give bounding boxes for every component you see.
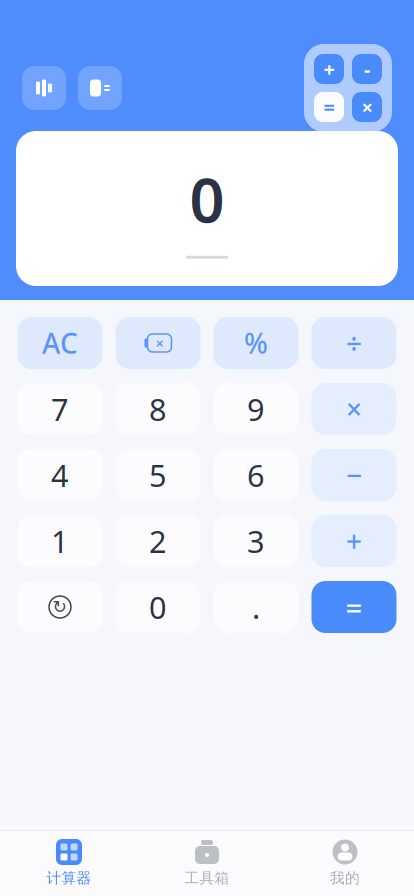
button[interactable]: %: [213, 317, 298, 369]
staticText: 我的: [330, 869, 360, 887]
staticText: ×: [361, 94, 372, 120]
staticText: 8: [149, 389, 167, 429]
staticText: +: [323, 56, 334, 82]
staticText: 7: [51, 389, 69, 429]
staticText: 3: [247, 521, 265, 561]
button[interactable]: +: [311, 515, 396, 567]
button[interactable]: Unit converter: [78, 66, 122, 110]
staticText: 1: [51, 521, 69, 561]
staticText: −: [346, 456, 362, 494]
button[interactable]: 3: [213, 515, 298, 567]
button[interactable]: ÷: [311, 317, 396, 369]
staticText: 9: [247, 389, 265, 429]
button[interactable]: 6: [213, 449, 298, 501]
button[interactable]: 1: [17, 515, 102, 567]
staticText: =: [345, 587, 362, 626]
button[interactable]: 8: [115, 383, 200, 435]
button[interactable]: 我的: [276, 837, 414, 889]
staticText: 工具箱: [184, 869, 229, 887]
staticText: 计算器: [46, 869, 91, 887]
button[interactable]: History: [17, 581, 102, 633]
button[interactable]: 4: [17, 449, 102, 501]
button[interactable]: 9: [213, 383, 298, 435]
button[interactable]: AC: [17, 317, 102, 369]
staticText: 0: [189, 158, 224, 240]
staticText: AC: [42, 324, 78, 362]
button[interactable]: 5: [115, 449, 200, 501]
button[interactable]: 0: [115, 581, 200, 633]
staticText: %: [244, 324, 268, 362]
staticText: .: [252, 587, 260, 627]
staticText: ×: [346, 390, 362, 428]
staticText: =: [323, 94, 334, 120]
button[interactable]: 工具箱: [138, 837, 276, 889]
button[interactable]: ×: [311, 383, 396, 435]
staticText: 2: [149, 521, 167, 561]
staticText: ↻: [52, 597, 67, 617]
button[interactable]: =: [311, 581, 396, 633]
button[interactable]: 2: [115, 515, 200, 567]
staticText: 4: [51, 455, 69, 495]
button[interactable]: 计算器: [0, 837, 138, 889]
staticText: 5: [149, 455, 167, 495]
button[interactable]: Statistics: [22, 66, 66, 110]
staticText: 0: [149, 587, 167, 627]
staticText: +: [346, 522, 362, 560]
button[interactable]: .: [213, 581, 298, 633]
staticText: -: [364, 56, 370, 82]
button[interactable]: −: [311, 449, 396, 501]
button[interactable]: Backspace: [115, 317, 200, 369]
staticText: 6: [247, 455, 265, 495]
staticText: ×: [155, 333, 163, 353]
button[interactable]: 7: [17, 383, 102, 435]
staticText: ÷: [346, 324, 362, 362]
